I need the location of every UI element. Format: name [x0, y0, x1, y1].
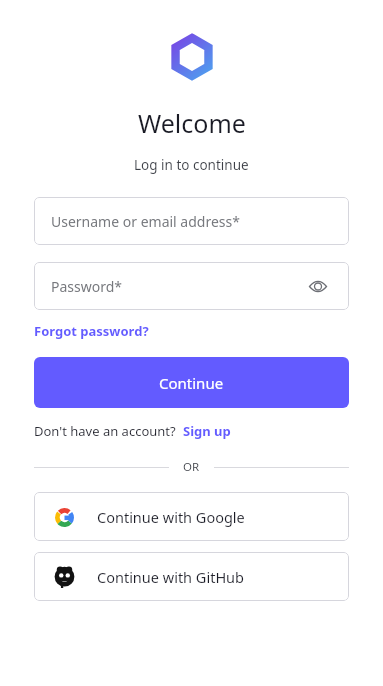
button[interactable]: Show password [304, 272, 332, 300]
staticText: Continue with GitHub [97, 567, 245, 587]
staticText: Password* [51, 277, 123, 296]
button[interactable]: Sign up [183, 422, 231, 440]
staticText: Don't have an account? [34, 422, 176, 440]
staticText: Username or email address* [51, 212, 240, 231]
staticText: Welcome [138, 106, 246, 140]
button[interactable]: Username or email address* [34, 197, 349, 245]
staticText: OR [183, 459, 200, 475]
staticText: Continue with Google [97, 507, 245, 527]
staticText: Sign up [183, 422, 231, 440]
button[interactable]: Forgot password? [34, 322, 149, 340]
button[interactable]: Continue [34, 357, 349, 408]
staticText: Forgot password? [34, 322, 149, 340]
button[interactable]: Continue with Google [34, 492, 349, 541]
button[interactable]: Continue with GitHub [34, 552, 349, 601]
button[interactable]: Password* [34, 262, 349, 310]
staticText: Log in to continue [134, 156, 249, 174]
staticText: Continue [159, 373, 224, 393]
